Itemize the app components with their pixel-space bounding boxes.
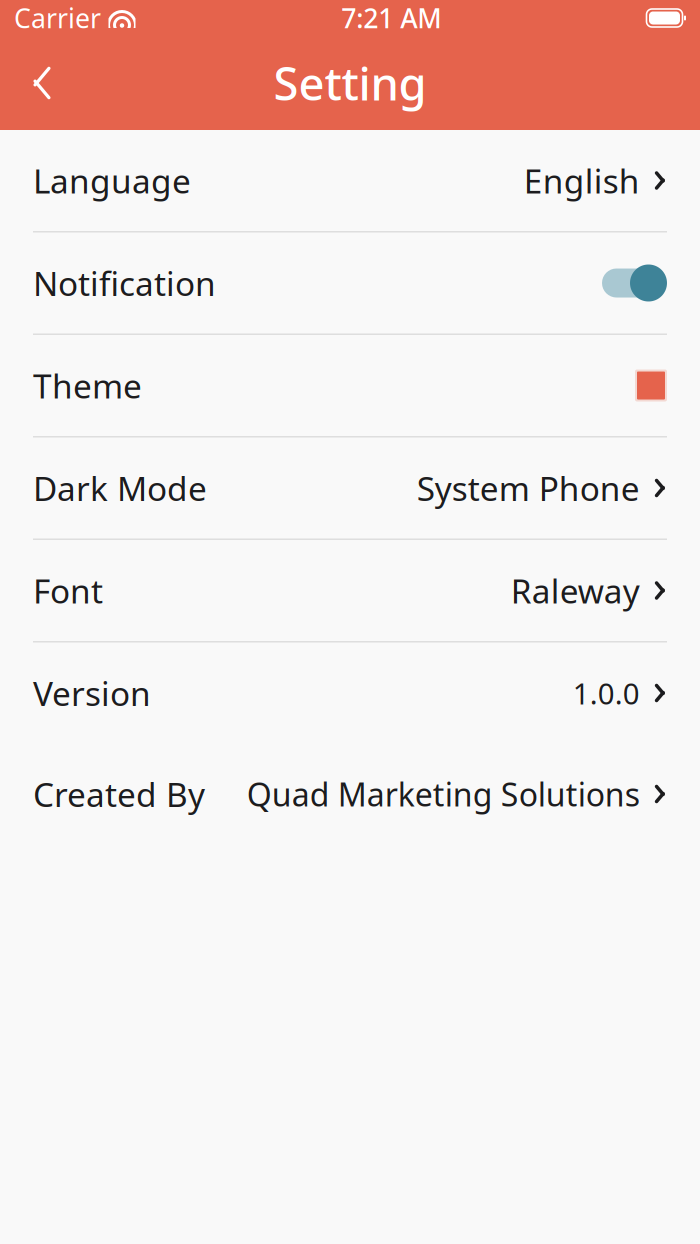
staticText: Raleway	[511, 568, 640, 613]
staticText: Language	[33, 158, 191, 203]
button[interactable]: Created By	[0, 743, 700, 844]
button[interactable]: Font	[0, 540, 700, 641]
staticText: 7:21 AM	[341, 0, 441, 36]
staticText: Version	[33, 671, 151, 715]
button[interactable]: Version	[0, 642, 700, 743]
button[interactable]: Back	[14, 55, 70, 111]
staticText: Dark Mode	[33, 466, 207, 510]
button[interactable]: Dark Mode	[0, 437, 700, 538]
staticText: 1.0.0	[573, 673, 640, 712]
button[interactable]: Language	[0, 130, 700, 231]
button[interactable]: Theme	[0, 335, 700, 436]
staticText: System Phone	[417, 466, 640, 510]
button[interactable]: Notification	[0, 232, 700, 333]
staticText: Setting	[273, 53, 426, 113]
staticText: Carrier	[14, 0, 101, 36]
staticText: Font	[33, 568, 103, 613]
staticText: Created By	[33, 772, 205, 816]
staticText: English	[524, 158, 640, 203]
staticText: Theme	[33, 363, 142, 408]
staticText: Quad Marketing Solutions	[247, 773, 640, 815]
staticText: Notification	[33, 261, 216, 305]
